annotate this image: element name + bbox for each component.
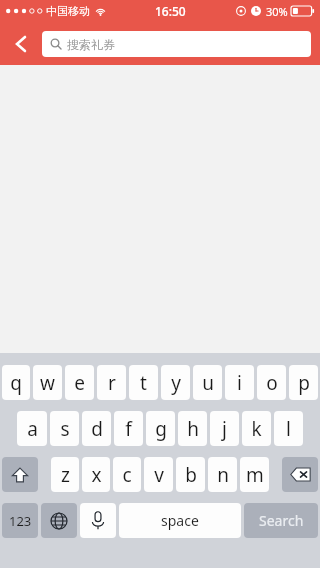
staticText: z: [61, 462, 70, 488]
staticText: b: [185, 462, 197, 488]
button[interactable]: Backspace: [282, 457, 318, 492]
button[interactable]: w: [33, 365, 62, 400]
staticText: u: [202, 370, 214, 396]
button[interactable]: Back: [0, 22, 42, 65]
button[interactable]: Switch keyboard: [41, 503, 77, 538]
button[interactable]: y: [161, 365, 190, 400]
button[interactable]: m: [240, 457, 269, 492]
staticText: e: [74, 370, 85, 396]
staticText: n: [217, 462, 229, 488]
button[interactable]: h: [178, 411, 207, 446]
staticText: c: [122, 462, 132, 488]
staticText: f: [125, 416, 132, 442]
staticText: q: [10, 370, 22, 396]
staticText: d: [91, 416, 103, 442]
button[interactable]: r: [97, 365, 126, 400]
button[interactable]: q: [2, 365, 30, 400]
staticText: j: [222, 416, 227, 442]
staticText: 16:50: [155, 3, 186, 19]
staticText: 123: [9, 512, 32, 530]
staticText: l: [286, 416, 291, 442]
staticText: m: [246, 462, 264, 488]
button[interactable]: Voice input: [80, 503, 116, 538]
button[interactable]: 搜索礼券: [42, 31, 311, 57]
button[interactable]: v: [144, 457, 173, 492]
button[interactable]: j: [210, 411, 239, 446]
button[interactable]: z: [51, 457, 79, 492]
button[interactable]: f: [114, 411, 143, 446]
button[interactable]: x: [82, 457, 110, 492]
staticText: i: [237, 370, 242, 396]
button[interactable]: s: [50, 411, 79, 446]
staticText: Search: [259, 511, 304, 530]
staticText: g: [155, 416, 167, 442]
button[interactable]: c: [113, 457, 141, 492]
staticText: h: [187, 416, 199, 442]
button[interactable]: a: [17, 411, 47, 446]
staticText: 30%: [266, 4, 288, 19]
staticText: r: [108, 370, 116, 396]
staticText: t: [140, 370, 147, 396]
staticText: o: [266, 370, 278, 396]
staticText: 搜索礼券: [67, 37, 115, 52]
button[interactable]: space: [119, 503, 241, 538]
staticText: p: [298, 370, 310, 396]
button[interactable]: g: [146, 411, 175, 446]
button[interactable]: u: [193, 365, 222, 400]
button[interactable]: p: [289, 365, 318, 400]
button[interactable]: o: [257, 365, 286, 400]
button[interactable]: e: [65, 365, 94, 400]
button[interactable]: k: [242, 411, 271, 446]
staticText: s: [60, 416, 70, 442]
button[interactable]: Shift: [2, 457, 38, 492]
button[interactable]: i: [225, 365, 254, 400]
button[interactable]: t: [129, 365, 158, 400]
staticText: a: [27, 416, 38, 442]
staticText: k: [251, 416, 262, 442]
staticText: w: [40, 370, 55, 396]
staticText: space: [161, 511, 199, 530]
button[interactable]: Search: [244, 503, 318, 538]
button[interactable]: 123: [2, 503, 38, 538]
button[interactable]: b: [176, 457, 205, 492]
staticText: 中国移动: [46, 4, 90, 18]
button[interactable]: d: [82, 411, 111, 446]
button[interactable]: n: [208, 457, 237, 492]
staticText: x: [91, 462, 102, 488]
button[interactable]: l: [274, 411, 303, 446]
staticText: v: [154, 462, 164, 488]
staticText: y: [171, 370, 181, 396]
